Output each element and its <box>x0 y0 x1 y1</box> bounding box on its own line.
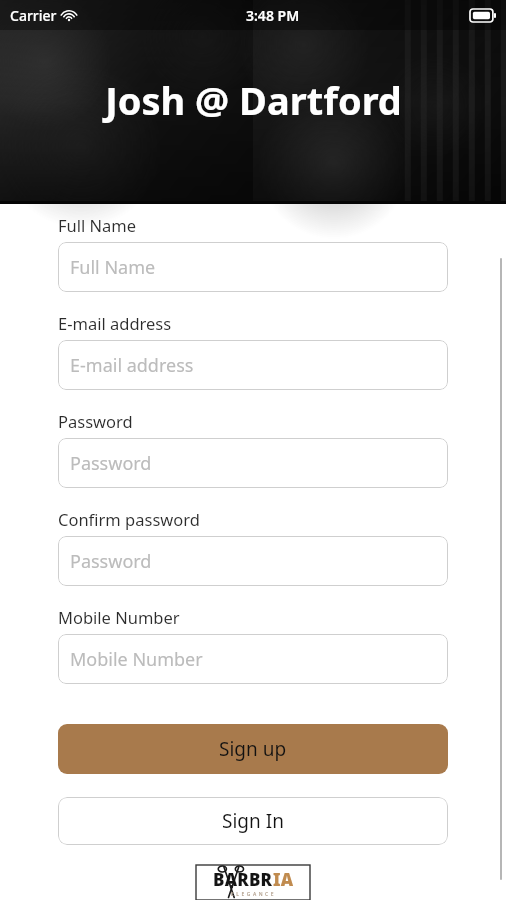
other: Battery full <box>470 9 496 22</box>
staticText: Mobile Number <box>70 647 203 672</box>
staticText: E L E G A N C E <box>231 891 275 898</box>
staticText: BARBR <box>213 868 273 891</box>
staticText: Full Name <box>58 214 137 236</box>
button[interactable]: E-mail address <box>58 340 448 390</box>
staticText: Mobile Number <box>58 606 180 628</box>
staticText: Sign In <box>222 808 284 834</box>
other: Wi-Fi <box>62 8 76 22</box>
staticText: E-mail address <box>70 353 194 378</box>
button[interactable]: Password <box>58 438 448 488</box>
staticText: Confirm password <box>58 508 200 530</box>
button[interactable]: Barbria Elegance logo <box>196 865 310 900</box>
staticText: Sign up <box>219 736 287 762</box>
button[interactable]: Sign up <box>58 724 448 774</box>
staticText: Password <box>70 549 152 574</box>
staticText: Password <box>70 451 152 476</box>
staticText: Password <box>58 410 133 432</box>
staticText: E-mail address <box>58 312 172 334</box>
staticText: Josh @ Dartford <box>105 74 402 126</box>
button[interactable]: Password <box>58 536 448 586</box>
staticText: 3:48 PM <box>246 6 300 25</box>
button[interactable]: Full Name <box>58 242 448 292</box>
button[interactable]: Sign In <box>58 797 448 845</box>
staticText: IA <box>273 868 294 891</box>
button[interactable]: Mobile Number <box>58 634 448 684</box>
staticText: Carrier <box>10 6 57 25</box>
staticText: Full Name <box>70 255 156 280</box>
